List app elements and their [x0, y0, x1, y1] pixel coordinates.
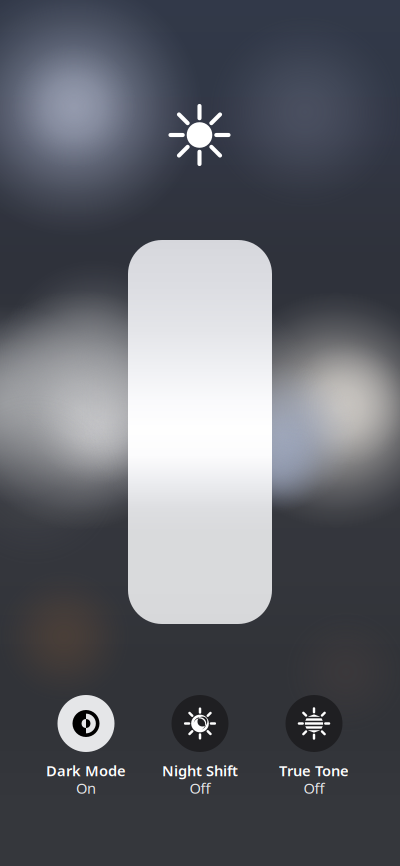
staticText: On [76, 778, 96, 798]
staticText: Off [189, 778, 210, 798]
staticText: Dark Mode [46, 761, 126, 780]
staticText: Off [303, 778, 324, 798]
button[interactable]: True Tone [260, 695, 368, 799]
staticText: Night Shift [162, 761, 238, 780]
button[interactable]: Night Shift [146, 695, 254, 799]
staticText: True Tone [279, 761, 349, 780]
button[interactable]: Dark Mode [32, 695, 140, 799]
